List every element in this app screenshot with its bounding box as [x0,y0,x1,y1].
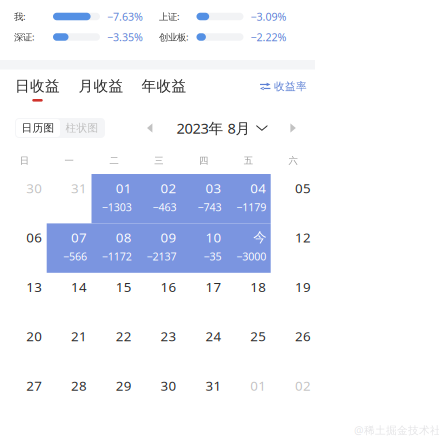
button[interactable]: 17 [181,273,226,322]
button[interactable]: 上一月 [147,123,152,133]
button[interactable]: 月收益 [78,79,123,102]
staticText: −1303 [102,200,132,214]
staticText: 13 [26,278,42,296]
button[interactable]: 日收益 [15,79,60,102]
staticText: −566 [63,249,87,263]
staticText: −35 [203,249,221,263]
staticText: 26 [295,327,311,345]
staticText: 创业板: [159,31,189,43]
staticText: 收益率 [274,80,307,93]
staticText: 25 [250,327,266,345]
button[interactable]: 09 [136,223,181,273]
button[interactable]: 25 [226,322,271,372]
staticText: −463 [153,200,177,214]
staticText: 30 [26,179,42,197]
button[interactable]: 24 [181,322,226,372]
button[interactable]: 18 [226,273,271,322]
staticText: 上证: [159,10,180,23]
button[interactable]: 08 [91,223,136,273]
staticText: 09 [161,228,177,246]
staticText: 10 [205,228,221,246]
button[interactable]: 12 [271,223,315,273]
staticText: 四 [199,155,208,166]
button[interactable]: 收益率 [260,80,307,93]
button[interactable]: 14 [47,273,91,322]
button[interactable]: 03 [181,174,226,223]
staticText: 15 [116,278,132,296]
button[interactable]: 13 [2,273,47,322]
staticText: 二 [109,155,118,166]
staticText: 06 [26,228,42,246]
staticText: 12 [295,228,311,246]
button[interactable]: 今 [226,223,271,273]
button[interactable]: 下一月 [290,123,296,133]
staticText: 24 [205,327,221,345]
staticText: 01 [250,377,266,394]
staticText: −3.35% [107,30,143,44]
button[interactable]: 26 [271,322,315,372]
button[interactable]: 21 [47,322,91,372]
staticText: 19 [295,278,311,296]
button[interactable]: 01 [226,372,271,421]
button[interactable]: 28 [47,372,91,421]
staticText: −743 [197,200,221,214]
staticText: 28 [71,377,87,394]
staticText: 柱状图 [65,121,98,134]
staticText: −1179 [236,200,266,214]
staticText: −2137 [147,249,177,263]
button[interactable]: 柱状图 [60,119,104,137]
button[interactable]: 20 [2,322,47,372]
button[interactable]: 29 [91,372,136,421]
staticText: 深证: [14,31,35,43]
button[interactable]: 31 [47,174,91,223]
staticText: 16 [161,278,177,296]
button[interactable]: 02 [271,372,315,421]
staticText: 一 [65,155,74,166]
button[interactable]: 07 [47,223,91,273]
button[interactable]: 2023年 8月 [176,118,267,138]
button[interactable]: 16 [136,273,181,322]
button[interactable]: 22 [91,322,136,372]
button[interactable]: 19 [271,273,315,322]
staticText: 18 [250,278,266,296]
staticText: 月收益 [78,77,123,95]
staticText: 我: [14,10,26,23]
button[interactable]: 30 [136,372,181,421]
button[interactable]: 年收益 [141,79,186,102]
staticText: 04 [250,179,266,197]
staticText: 日历图 [21,121,54,134]
staticText: −3000 [236,249,266,263]
button[interactable]: 06 [2,223,47,273]
button[interactable]: 02 [136,174,181,223]
button[interactable]: 04 [226,174,271,223]
button[interactable]: 30 [2,174,47,223]
staticText: 03 [205,179,221,197]
staticText: 05 [295,179,311,197]
button[interactable]: 01 [91,174,136,223]
button[interactable]: 15 [91,273,136,322]
staticText: 08 [116,228,132,246]
button[interactable]: 27 [2,372,47,421]
staticText: 07 [71,228,87,246]
button[interactable]: 日历图 [16,119,60,137]
staticText: 02 [161,179,177,197]
button[interactable]: 31 [181,372,226,421]
staticText: 14 [71,278,87,296]
button[interactable]: 05 [271,174,315,223]
staticText: 三 [154,155,163,166]
button[interactable]: 10 [181,223,226,273]
button[interactable]: 23 [136,322,181,372]
staticText: 30 [161,377,177,394]
